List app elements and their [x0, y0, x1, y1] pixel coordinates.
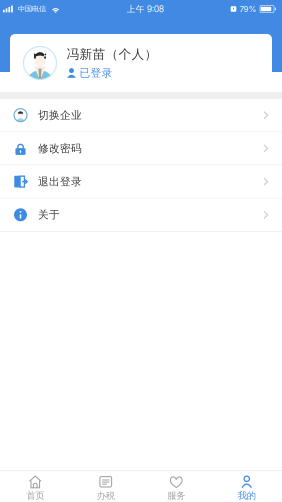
staticText: 已登录	[79, 66, 112, 80]
staticText: 修改密码	[38, 142, 82, 155]
button[interactable]: 我的	[211, 471, 282, 502]
staticText: 关于	[38, 208, 60, 221]
button[interactable]: 首页	[0, 471, 70, 502]
button[interactable]: 退出登录	[0, 165, 282, 199]
staticText: 冯新苗（个人）	[66, 46, 157, 62]
button[interactable]: 办税	[70, 471, 141, 502]
button[interactable]: 关于	[0, 199, 282, 232]
staticText: 79%	[239, 4, 256, 14]
staticText: 办税	[97, 490, 115, 502]
staticText: 服务	[167, 490, 185, 502]
button[interactable]: 切换企业	[0, 99, 282, 132]
button[interactable]: 修改密码	[0, 132, 282, 165]
staticText: 切换企业	[38, 108, 82, 122]
staticText: 退出登录	[38, 175, 82, 188]
button[interactable]: 服务	[141, 471, 211, 502]
staticText: 上午 9:08	[127, 3, 164, 14]
staticText: 中国电信	[18, 4, 46, 14]
staticText: 首页	[26, 490, 44, 502]
staticText: 我的	[238, 490, 256, 502]
